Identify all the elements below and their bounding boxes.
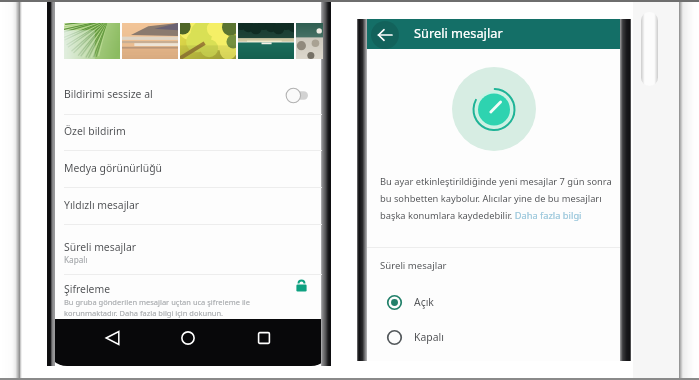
button[interactable]: Bildirimi sessize al xyxy=(55,81,321,107)
staticText: Süreli mesajlar xyxy=(414,24,503,41)
staticText: Yıldızlı mesajlar xyxy=(64,198,140,212)
button[interactable]: Media xyxy=(122,23,178,59)
staticText: Şifreleme xyxy=(64,282,111,296)
button[interactable]: Back xyxy=(371,21,399,49)
staticText: Kapalı xyxy=(64,254,88,265)
button[interactable]: Recent apps xyxy=(255,329,273,347)
staticText: Medya görünürlüğü xyxy=(64,161,162,175)
button[interactable]: Mute notifications xyxy=(286,88,308,104)
button[interactable]: Kapalı xyxy=(366,323,621,351)
staticText: Bu ayar etkinleştirildiğinde yeni mesajl… xyxy=(380,175,618,222)
button[interactable]: Back xyxy=(104,329,122,347)
button[interactable]: Süreli mesajlar xyxy=(55,234,321,260)
button[interactable]: Home xyxy=(179,329,197,347)
button[interactable]: Medya görünürlüğü xyxy=(55,155,321,181)
button[interactable]: Şifreleme xyxy=(55,276,321,302)
button[interactable]: Yıldızlı mesajlar xyxy=(55,192,321,218)
button[interactable]: Açık xyxy=(366,288,621,316)
staticText: Açık xyxy=(414,295,434,309)
button[interactable]: Özel bildirim xyxy=(55,118,321,144)
button[interactable]: Media xyxy=(296,23,323,59)
staticText: Özel bildirim xyxy=(64,124,126,138)
staticText: Bildirimi sessize al xyxy=(64,87,153,101)
staticText: Süreli mesajlar xyxy=(380,259,447,272)
staticText: Bu gruba gönderilen mesajlar uçtan uca ş… xyxy=(64,297,251,307)
button[interactable]: Media xyxy=(64,23,120,59)
button[interactable]: Media xyxy=(180,23,236,59)
staticText: Süreli mesajlar xyxy=(64,240,136,254)
staticText: Kapalı xyxy=(414,330,444,344)
staticText: korunmaktadır. Daha fazla bilgi için dok… xyxy=(64,308,224,318)
button[interactable]: Media xyxy=(238,23,294,59)
